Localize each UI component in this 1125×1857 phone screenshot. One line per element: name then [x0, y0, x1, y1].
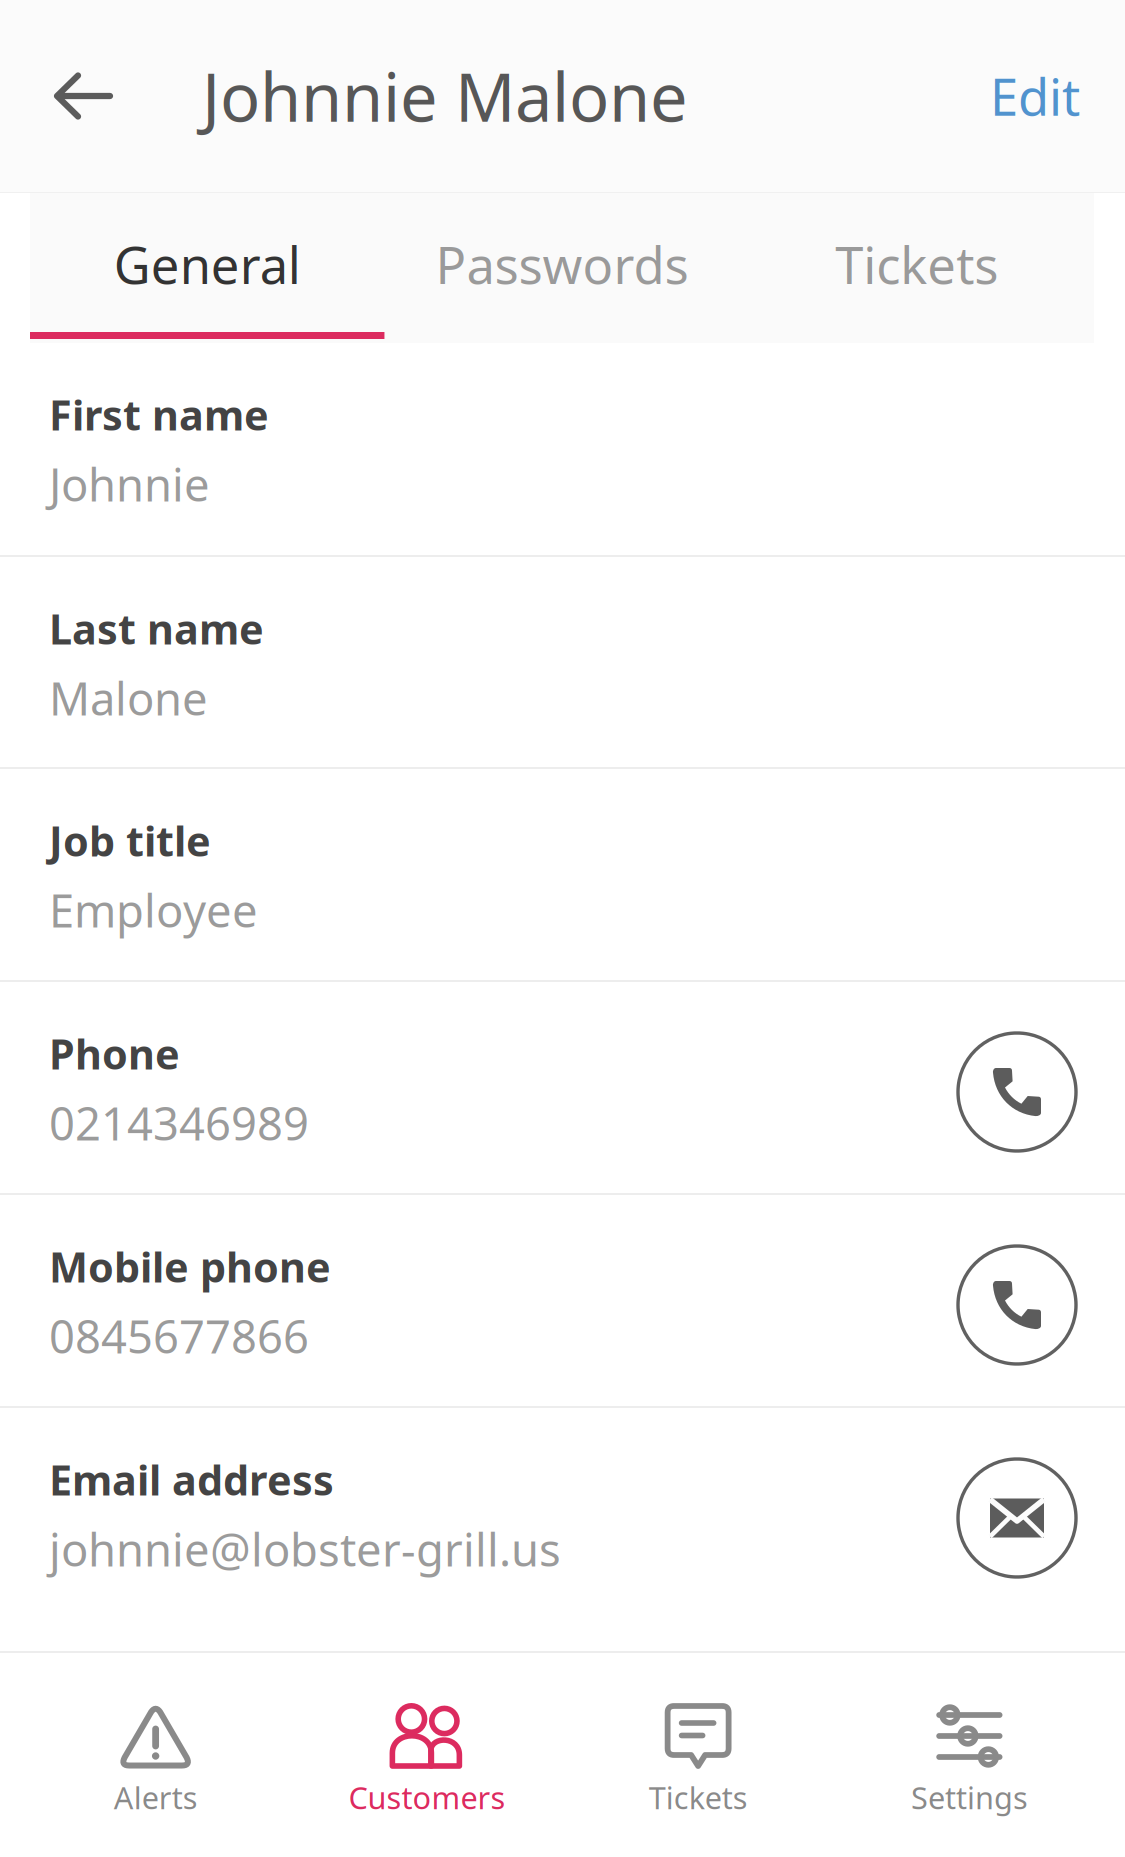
- staticText: First name: [49, 387, 269, 442]
- staticText: johnnie@lobster-grill.us: [49, 1519, 561, 1579]
- button[interactable]: Send email: [958, 1408, 1076, 1577]
- staticText: Malone: [49, 668, 208, 728]
- button[interactable]: Back: [0, 0, 154, 192]
- staticText: Settings: [911, 1777, 1028, 1818]
- staticText: Tickets: [835, 231, 998, 298]
- staticText: Employee: [49, 880, 258, 940]
- staticText: Tickets: [649, 1777, 748, 1818]
- button[interactable]: Call: [958, 982, 1076, 1151]
- staticText: Johnnie: [49, 454, 210, 514]
- button[interactable]: Customers: [291, 1653, 562, 1857]
- staticText: Alerts: [114, 1777, 198, 1818]
- button[interactable]: Tickets: [562, 1653, 834, 1857]
- button[interactable]: Edit: [980, 0, 1125, 192]
- button[interactable]: Passwords: [385, 193, 739, 343]
- staticText: Mobile phone: [49, 1239, 331, 1294]
- staticText: Phone: [49, 1026, 180, 1081]
- button[interactable]: General: [30, 193, 385, 343]
- button[interactable]: Tickets: [739, 193, 1094, 343]
- staticText: Edit: [990, 62, 1080, 130]
- staticText: General: [114, 231, 301, 298]
- staticText: Job title: [49, 813, 211, 868]
- button[interactable]: Alerts: [20, 1653, 291, 1857]
- staticText: 0214346989: [49, 1093, 309, 1153]
- staticText: Email address: [49, 1452, 334, 1507]
- button[interactable]: Call: [958, 1195, 1076, 1364]
- staticText: Customers: [348, 1777, 505, 1818]
- staticText: 0845677866: [49, 1306, 309, 1366]
- staticText: Johnnie Malone: [202, 52, 688, 140]
- button[interactable]: Settings: [834, 1653, 1105, 1857]
- staticText: Last name: [49, 601, 264, 656]
- staticText: Passwords: [435, 231, 688, 298]
